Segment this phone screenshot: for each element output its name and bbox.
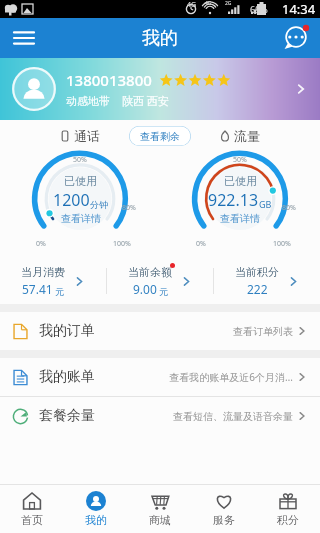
staticText: 57.41 (22, 281, 53, 297)
staticText: 已使用 (224, 174, 257, 188)
staticText: 分钟 (90, 199, 108, 210)
button[interactable]: 首页 (0, 485, 64, 533)
staticText: 商城 (149, 513, 171, 527)
staticText: 我的 (85, 513, 107, 527)
staticText: 222 (247, 281, 268, 297)
button[interactable]: Messages (280, 22, 312, 54)
staticText: 14:34 (282, 0, 316, 18)
button[interactable]: 查看详情 (220, 212, 260, 225)
button[interactable]: 我的订单 (0, 312, 320, 350)
staticText: 当前余额 (128, 265, 172, 279)
staticText: 4G (187, 0, 197, 10)
button[interactable]: 积分 (256, 485, 320, 533)
staticText: 69% (250, 3, 268, 15)
staticText: 我的 (142, 27, 178, 50)
staticText: 陕西 西安 (122, 93, 169, 108)
button[interactable]: 我的 (64, 485, 128, 533)
staticText: 当前积分 (235, 265, 279, 279)
staticText: 2G (225, 0, 232, 7)
staticText: GB (259, 198, 272, 210)
staticText: 动感地带 (66, 94, 110, 108)
staticText: 9.00 (133, 281, 157, 297)
staticText: 922.13 (208, 189, 259, 211)
button[interactable]: 服务 (192, 485, 256, 533)
staticText: 1380013800 (66, 70, 152, 90)
button[interactable]: 商城 (128, 485, 192, 533)
staticText: 已使用 (64, 174, 97, 188)
staticText: 50% (233, 155, 247, 165)
staticText: 0% (36, 239, 46, 249)
staticText: 100% (113, 239, 131, 249)
staticText: 查看详情 (220, 212, 260, 225)
staticText: 1200 (53, 189, 90, 211)
staticText: 0% (196, 239, 206, 249)
staticText: 80% (122, 203, 136, 213)
staticText: 当月消费 (21, 265, 65, 279)
staticText: 4G (205, 0, 212, 7)
staticText: 元 (159, 286, 168, 297)
staticText: 查看详情 (61, 212, 101, 225)
staticText: 查看我的账单及近6个月消… (169, 370, 293, 384)
button[interactable]: 当月消费 (0, 258, 106, 304)
staticText: 我的账单 (39, 368, 95, 386)
staticText: 查看订单列表 (233, 325, 293, 338)
button[interactable]: 套餐余量 (0, 397, 320, 435)
staticText: 服务 (213, 513, 235, 527)
staticText: 元 (55, 286, 64, 297)
staticText: 80% (282, 203, 296, 213)
staticText: 通话 (74, 128, 100, 144)
button[interactable]: 查看剩余 (129, 126, 191, 146)
staticText: 我的订单 (39, 322, 95, 340)
staticText: 100% (273, 239, 291, 249)
staticText: 查看短信、流量及语音余量 (173, 410, 293, 423)
staticText: 套餐余量 (39, 407, 95, 425)
button[interactable]: 当前积分 (214, 258, 320, 304)
staticText: 50% (73, 155, 87, 165)
staticText: 首页 (21, 513, 43, 527)
button[interactable]: 1380013800 (0, 58, 320, 120)
button[interactable]: Menu (8, 22, 40, 54)
staticText: 查看剩余 (140, 130, 180, 143)
staticText: 积分 (277, 513, 299, 527)
button[interactable]: 当前余额 (107, 258, 213, 304)
button[interactable]: 我的账单 (0, 358, 320, 396)
button[interactable]: 查看详情 (61, 212, 101, 225)
staticText: 流量 (234, 128, 260, 144)
